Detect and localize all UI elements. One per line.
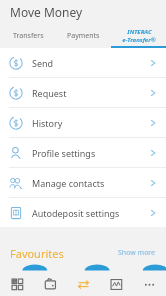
button[interactable]: Move Money	[67, 272, 100, 296]
button[interactable]: Profile settings	[0, 138, 166, 167]
staticText: Send	[32, 57, 54, 69]
button[interactable]: Insights	[100, 272, 133, 296]
staticText: Move Money	[10, 4, 83, 20]
button[interactable]: Request	[0, 78, 166, 107]
staticText: Manage contacts	[32, 177, 105, 189]
staticText: Profile settings	[32, 147, 96, 159]
button[interactable]: Dashboard	[0, 272, 34, 296]
button[interactable]: Transfers	[0, 24, 56, 48]
button[interactable]: History	[0, 108, 166, 137]
button[interactable]: INTERAC	[111, 24, 166, 48]
staticText: Autodeposit settings	[32, 207, 120, 219]
staticText: INTERAC	[127, 28, 152, 36]
button[interactable]: Show more	[118, 248, 156, 258]
staticText: Show more	[118, 248, 156, 258]
staticText: Request	[32, 87, 67, 99]
button[interactable]: Payments	[56, 24, 111, 48]
staticText: e-Transfer®	[122, 36, 156, 44]
staticText: History	[32, 117, 63, 129]
button[interactable]: Manage contacts	[0, 168, 166, 197]
staticText: Payments	[67, 31, 100, 41]
button[interactable]: Autodeposit settings	[0, 198, 166, 227]
button[interactable]: More	[133, 272, 166, 296]
staticText: Transfers	[13, 31, 44, 41]
button[interactable]: Accounts	[34, 272, 67, 296]
button[interactable]: Send	[0, 48, 166, 77]
staticText: Favourites	[10, 246, 64, 261]
